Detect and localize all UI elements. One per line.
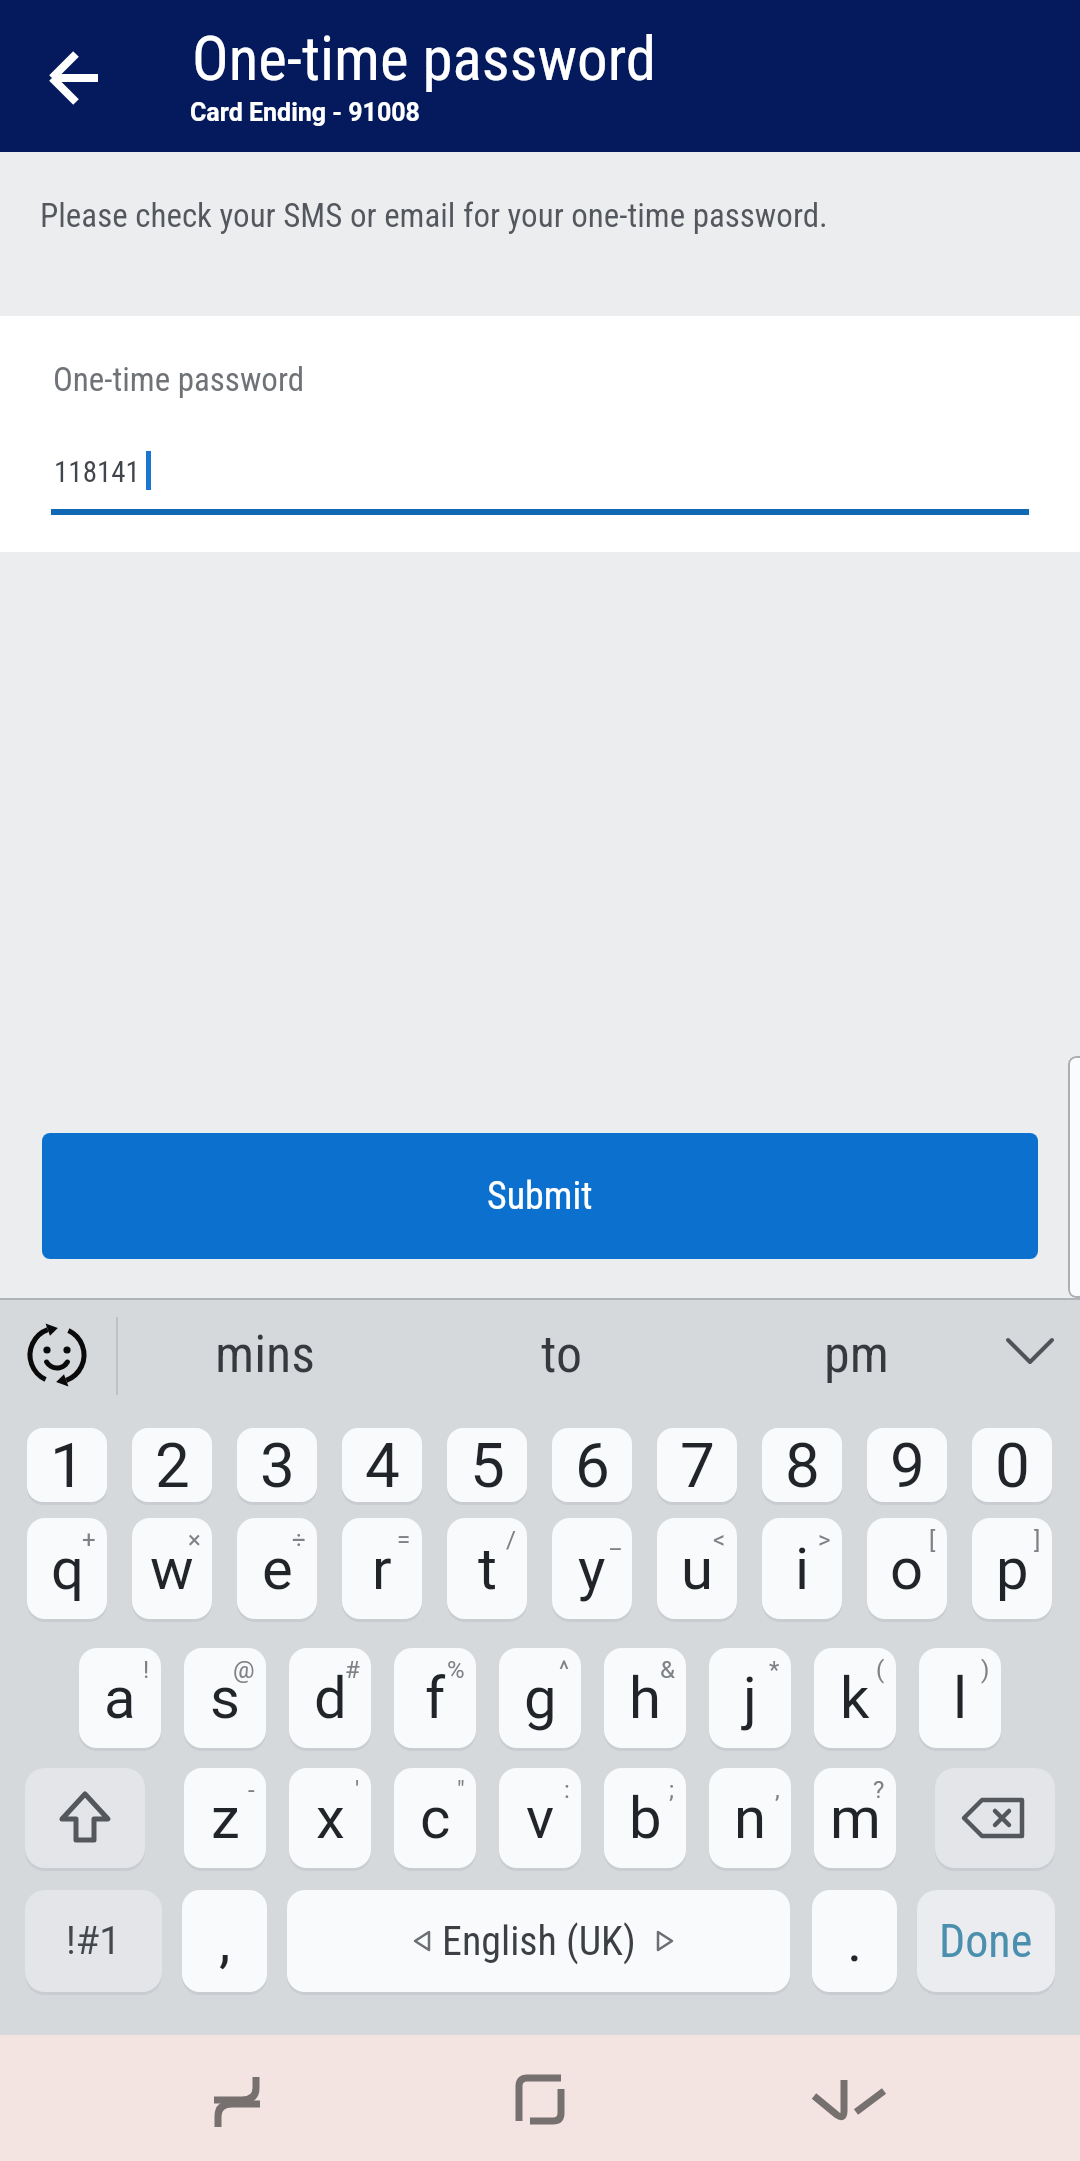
staticText: ÷ bbox=[292, 1526, 306, 1554]
button[interactable] bbox=[24, 30, 120, 126]
staticText: _ bbox=[610, 1526, 621, 1554]
staticText: 9 bbox=[890, 1429, 925, 1502]
staticText: m bbox=[830, 1784, 881, 1852]
staticText: to bbox=[541, 1324, 582, 1385]
staticText: × bbox=[188, 1526, 201, 1554]
button[interactable]: Done bbox=[917, 1890, 1055, 1992]
staticText: 6 bbox=[575, 1429, 610, 1502]
staticText: ^ bbox=[559, 1656, 570, 1684]
button[interactable]: v bbox=[499, 1768, 581, 1868]
staticText: q bbox=[51, 1535, 84, 1603]
button[interactable]: w bbox=[132, 1518, 212, 1619]
button[interactable]: a bbox=[79, 1648, 161, 1748]
button[interactable]: k bbox=[814, 1648, 896, 1748]
button[interactable]: . bbox=[812, 1890, 897, 1992]
staticText: English (UK) bbox=[442, 1918, 636, 1965]
staticText: p bbox=[996, 1535, 1029, 1603]
staticText: ) bbox=[981, 1656, 990, 1684]
button[interactable]: r bbox=[342, 1518, 422, 1619]
button[interactable]: 7 bbox=[657, 1428, 737, 1502]
staticText: f bbox=[425, 1664, 446, 1732]
button[interactable]: l bbox=[919, 1648, 1001, 1748]
button[interactable]: to bbox=[461, 1322, 661, 1386]
staticText: 0 bbox=[995, 1429, 1030, 1502]
staticText: v bbox=[526, 1784, 555, 1852]
button[interactable]: t bbox=[447, 1518, 527, 1619]
button[interactable]: Submit bbox=[42, 1133, 1038, 1259]
staticText: , bbox=[219, 1907, 231, 1975]
staticText: j bbox=[743, 1664, 757, 1732]
button[interactable]: English (UK) bbox=[287, 1890, 790, 1992]
button[interactable] bbox=[25, 1768, 145, 1868]
button[interactable]: mins bbox=[165, 1322, 365, 1386]
button[interactable] bbox=[490, 2050, 590, 2150]
button[interactable]: m bbox=[814, 1768, 896, 1868]
button[interactable]: 0 bbox=[972, 1428, 1052, 1502]
button[interactable]: pm bbox=[756, 1322, 956, 1386]
button[interactable]: z bbox=[184, 1768, 266, 1868]
button[interactable]: h bbox=[604, 1648, 686, 1748]
staticText: d bbox=[314, 1664, 347, 1732]
button[interactable]: u bbox=[657, 1518, 737, 1619]
staticText: + bbox=[82, 1526, 96, 1554]
button[interactable]: 1 bbox=[27, 1428, 107, 1502]
button[interactable]: 8 bbox=[762, 1428, 842, 1502]
button[interactable]: !#1 bbox=[25, 1890, 162, 1992]
staticText: . bbox=[847, 1907, 863, 1975]
staticText: One-time password bbox=[53, 360, 305, 399]
staticText: l bbox=[953, 1664, 968, 1732]
staticText: ; bbox=[669, 1776, 675, 1804]
button[interactable] bbox=[15, 1313, 99, 1397]
staticText: - bbox=[248, 1776, 255, 1804]
staticText: c bbox=[420, 1784, 451, 1852]
button[interactable]: s bbox=[184, 1648, 266, 1748]
button[interactable]: j bbox=[709, 1648, 791, 1748]
staticText: = bbox=[397, 1526, 411, 1554]
staticText: , bbox=[775, 1776, 780, 1804]
button[interactable]: d bbox=[289, 1648, 371, 1748]
staticText: Card Ending - 91008 bbox=[190, 98, 420, 127]
button[interactable] bbox=[187, 2050, 287, 2150]
staticText: h bbox=[629, 1664, 661, 1732]
staticText: ? bbox=[873, 1776, 885, 1804]
button[interactable]: c bbox=[394, 1768, 476, 1868]
button[interactable] bbox=[935, 1768, 1055, 1868]
staticText: % bbox=[447, 1656, 465, 1684]
staticText: e bbox=[262, 1535, 293, 1603]
button[interactable]: e bbox=[237, 1518, 317, 1619]
button[interactable]: 5 bbox=[447, 1428, 527, 1502]
button[interactable]: g bbox=[499, 1648, 581, 1748]
button[interactable]: 3 bbox=[237, 1428, 317, 1502]
button[interactable]: f bbox=[394, 1648, 476, 1748]
staticText: 2 bbox=[155, 1429, 190, 1502]
button[interactable]: p bbox=[972, 1518, 1052, 1619]
staticText: a bbox=[104, 1664, 136, 1732]
button[interactable]: n bbox=[709, 1768, 791, 1868]
button[interactable] bbox=[798, 2050, 898, 2150]
staticText: & bbox=[660, 1656, 675, 1684]
button[interactable] bbox=[990, 1318, 1070, 1390]
staticText: r bbox=[372, 1535, 392, 1603]
staticText: > bbox=[818, 1526, 831, 1554]
button[interactable]: 6 bbox=[552, 1428, 632, 1502]
button[interactable]: i bbox=[762, 1518, 842, 1619]
staticText: 8 bbox=[785, 1429, 820, 1502]
button[interactable]: 4 bbox=[342, 1428, 422, 1502]
staticText: : bbox=[564, 1776, 570, 1804]
button[interactable]: o bbox=[867, 1518, 947, 1619]
staticText: 3 bbox=[260, 1429, 295, 1502]
button[interactable]: 9 bbox=[867, 1428, 947, 1502]
button[interactable]: q bbox=[27, 1518, 107, 1619]
staticText: i bbox=[795, 1535, 810, 1603]
staticText: 4 bbox=[365, 1429, 400, 1502]
button[interactable]: b bbox=[604, 1768, 686, 1868]
button[interactable]: 2 bbox=[132, 1428, 212, 1502]
staticText: s bbox=[210, 1664, 240, 1732]
staticText: " bbox=[457, 1776, 465, 1804]
button[interactable]: , bbox=[182, 1890, 267, 1992]
button[interactable]: x bbox=[289, 1768, 371, 1868]
staticText: !#1 bbox=[66, 1919, 121, 1964]
button[interactable]: y bbox=[552, 1518, 632, 1619]
staticText: < bbox=[713, 1526, 726, 1554]
staticText: # bbox=[345, 1656, 360, 1684]
